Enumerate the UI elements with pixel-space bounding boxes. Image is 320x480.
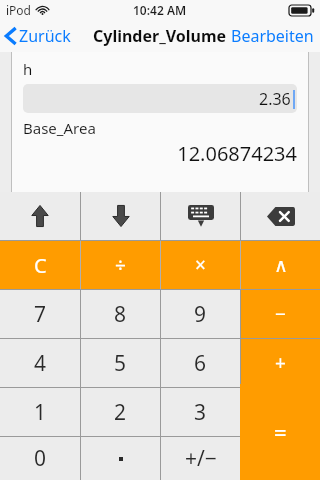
- button[interactable]: [81, 437, 160, 480]
- button[interactable]: C: [0, 241, 80, 289]
- staticText: =: [274, 417, 287, 447]
- staticText: 2: [114, 398, 127, 427]
- staticText: h: [23, 59, 33, 79]
- staticText: ÷: [115, 252, 126, 278]
- staticText: 9: [194, 300, 207, 329]
- button[interactable]: ∧: [241, 241, 320, 289]
- staticText: 1: [34, 398, 47, 427]
- button[interactable]: =: [240, 384, 320, 480]
- button[interactable]: 5: [81, 339, 160, 387]
- button[interactable]: 2.36: [23, 84, 297, 113]
- button[interactable]: Zurück: [0, 23, 77, 49]
- staticText: 3: [194, 398, 207, 427]
- button[interactable]: Backspace: [241, 192, 320, 240]
- staticText: 12.06874234: [23, 140, 297, 167]
- button[interactable]: ×: [161, 241, 240, 289]
- button[interactable]: 4: [0, 339, 80, 387]
- button[interactable]: +: [241, 339, 320, 387]
- button[interactable]: ÷: [81, 241, 160, 289]
- button[interactable]: −: [241, 290, 320, 338]
- staticText: 4: [34, 349, 47, 378]
- button[interactable]: Previous field: [0, 192, 80, 240]
- staticText: 2.36: [259, 88, 291, 110]
- button[interactable]: Next field: [81, 192, 160, 240]
- button[interactable]: 3: [161, 388, 240, 436]
- button[interactable]: 6: [161, 339, 240, 387]
- staticText: Base_Area: [23, 118, 96, 138]
- staticText: ∧: [274, 254, 288, 276]
- button[interactable]: +/−: [161, 437, 240, 480]
- staticText: 7: [34, 300, 47, 329]
- button[interactable]: 2: [81, 388, 160, 436]
- staticText: Cylinder_Volume: [93, 25, 227, 47]
- staticText: 10:42 AM: [133, 2, 187, 18]
- staticText: +: [275, 350, 286, 376]
- button[interactable]: 7: [0, 290, 80, 338]
- staticText: Bearbeiten: [231, 25, 314, 47]
- button[interactable]: 9: [161, 290, 240, 338]
- button[interactable]: 0: [0, 437, 80, 480]
- staticText: 6: [194, 349, 207, 378]
- staticText: C: [34, 252, 47, 279]
- button[interactable]: 1: [0, 388, 80, 436]
- staticText: 0: [34, 444, 47, 473]
- button[interactable]: 8: [81, 290, 160, 338]
- staticText: Zurück: [19, 25, 71, 47]
- staticText: ×: [195, 252, 206, 278]
- staticText: +/−: [185, 444, 217, 473]
- staticText: iPod: [6, 2, 31, 18]
- button[interactable]: Bearbeiten: [225, 21, 320, 51]
- staticText: 8: [114, 300, 127, 329]
- staticText: 5: [114, 349, 127, 378]
- staticText: −: [275, 301, 286, 327]
- button[interactable]: Hide keyboard: [161, 192, 240, 240]
